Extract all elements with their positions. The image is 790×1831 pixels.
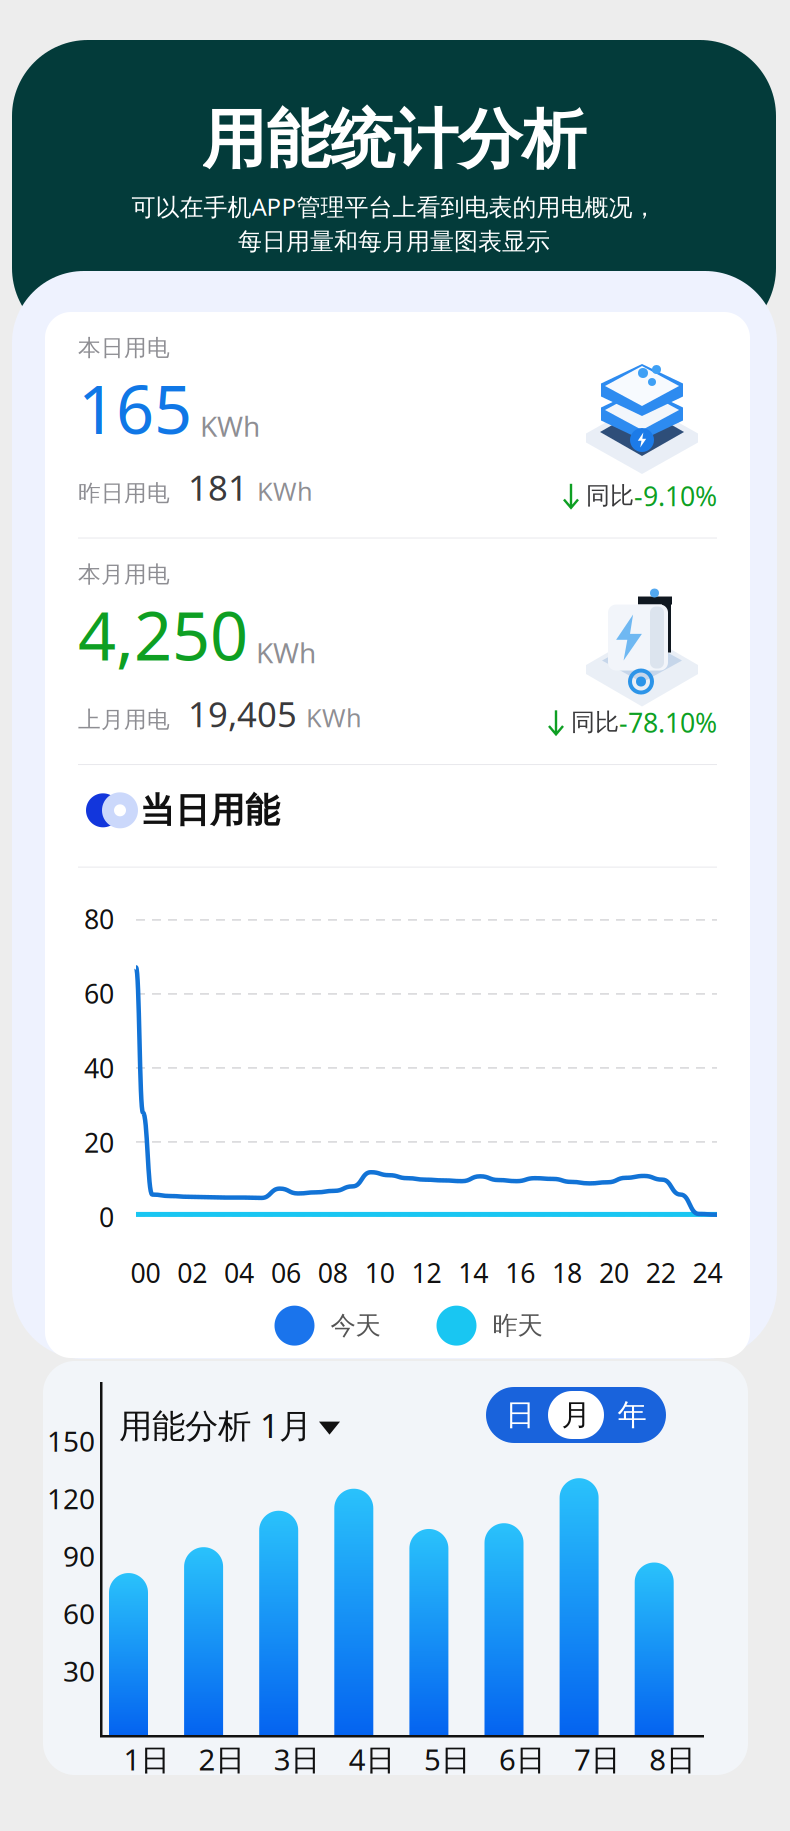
staticText: 同比 [564, 708, 619, 737]
button[interactable]: 月 [548, 1391, 604, 1439]
staticText: 60 [63, 1595, 95, 1632]
staticText: 今天 [314, 1310, 380, 1341]
staticText: 本日用电 [78, 334, 170, 362]
staticText: 5日 [424, 1739, 470, 1778]
staticText: KWh [200, 407, 260, 444]
staticText: 本月用电 [78, 560, 170, 588]
staticText: 24 [693, 1255, 723, 1290]
staticText: 10 [365, 1255, 395, 1290]
staticText: 181 [170, 464, 257, 510]
staticText: 165 [78, 364, 192, 452]
staticText: 90 [63, 1537, 95, 1575]
staticText: 12 [411, 1255, 441, 1290]
staticText: 上月用电 [78, 706, 170, 734]
staticText: 可以在手机APP管理平台上看到电表的用电概况， [131, 191, 656, 222]
staticText: 20 [84, 1125, 114, 1160]
staticText: 6日 [499, 1739, 545, 1778]
staticText: 昨天 [476, 1310, 542, 1341]
button[interactable]: 年 [604, 1391, 660, 1439]
staticText: 30 [63, 1652, 95, 1690]
staticText: 150 [47, 1422, 95, 1460]
button[interactable]: 日 [492, 1391, 548, 1439]
staticText: 04 [224, 1255, 254, 1290]
staticText: 18 [552, 1255, 582, 1290]
staticText: 4日 [349, 1739, 395, 1778]
staticText: 60 [84, 976, 114, 1011]
staticText: 02 [177, 1255, 207, 1290]
staticText: KWh [306, 701, 362, 734]
staticText: 同比 [579, 481, 634, 511]
staticText: 4,250 [78, 590, 248, 679]
staticText: 当日用能 [140, 789, 280, 832]
staticText: 22 [646, 1255, 676, 1290]
staticText: -9.10% [634, 478, 717, 513]
staticText: 月 [561, 1397, 590, 1433]
staticText: 用能分析 1月 [119, 1403, 312, 1447]
staticText: 年 [617, 1397, 646, 1433]
staticText: 2日 [199, 1739, 245, 1778]
staticText: 20 [599, 1255, 629, 1290]
staticText: 80 [84, 901, 114, 937]
staticText: 06 [271, 1255, 301, 1290]
staticText: -78.10% [619, 705, 717, 740]
staticText: 7日 [574, 1739, 620, 1778]
staticText: KWh [257, 474, 313, 508]
staticText: 3日 [274, 1739, 320, 1778]
staticText: 1日 [123, 1739, 169, 1778]
staticText: 40 [84, 1050, 114, 1086]
staticText: 14 [458, 1255, 488, 1290]
staticText: 0 [99, 1199, 114, 1235]
staticText: 日 [505, 1397, 534, 1433]
staticText: 120 [47, 1480, 95, 1517]
staticText: 昨日用电 [78, 479, 170, 507]
staticText: 16 [505, 1255, 535, 1290]
staticText: 用能统计分析 [202, 101, 586, 179]
staticText: 08 [318, 1255, 348, 1290]
staticText: 每日用量和每月用量图表显示 [238, 227, 550, 256]
staticText: 8日 [649, 1739, 695, 1778]
staticText: 00 [130, 1255, 160, 1290]
staticText: 19,405 [170, 691, 306, 737]
staticText: KWh [256, 634, 316, 671]
